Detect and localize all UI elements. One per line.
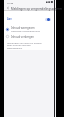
staticText: Meldingen op vergrendelingsscherm: [11, 7, 62, 11]
button[interactable]: Inhoud verbergen: [4, 34, 56, 39]
staticText: Inhoud weergeven: [11, 26, 35, 30]
button[interactable]: Schakelaar: [44, 17, 52, 22]
staticText: 12:30: [7, 1, 14, 4]
staticText: Gevoelige meldingsinhoud weergeven: [11, 30, 50, 33]
button[interactable]: Terug: [6, 6, 10, 10]
staticText: Aan: [7, 17, 12, 21]
staticText: Inhoud verbergen: [11, 35, 34, 39]
staticText: Meldingen van apps en andere apps kunnen…: [7, 41, 43, 50]
button[interactable]: Inhoud weergeven: [4, 26, 56, 33]
